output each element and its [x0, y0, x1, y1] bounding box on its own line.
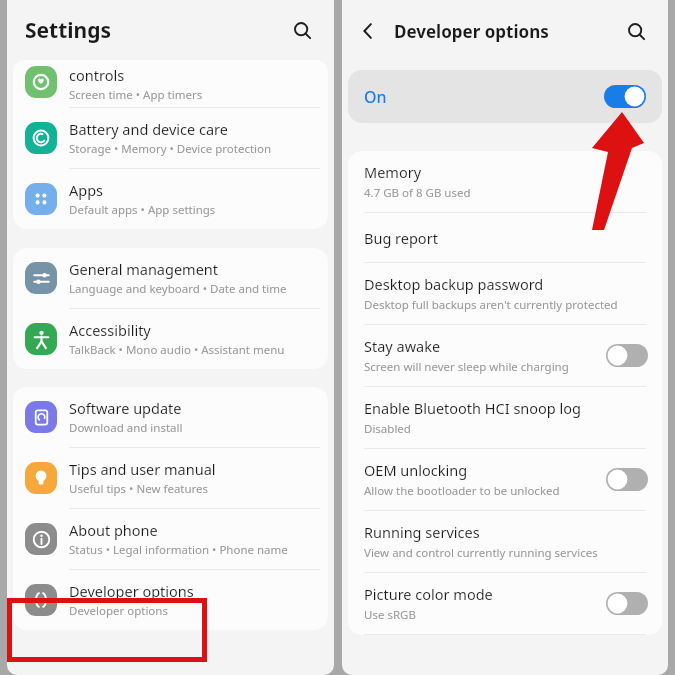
- staticText: Disabled: [364, 421, 411, 437]
- staticText: Software update: [69, 398, 182, 418]
- staticText: On: [364, 86, 604, 108]
- button[interactable]: Picture color mode: [348, 573, 662, 635]
- button[interactable]: Stay awake: [348, 325, 662, 387]
- staticText: Desktop backup password: [364, 274, 544, 294]
- staticText: Developer options: [69, 603, 168, 619]
- staticText: Screen will never sleep while charging: [364, 359, 569, 375]
- button[interactable]: Accessibility: [13, 309, 328, 369]
- staticText: About phone: [69, 520, 158, 540]
- staticText: General management: [69, 259, 219, 279]
- staticText: Bug report: [364, 228, 438, 248]
- staticText: Running services: [364, 522, 480, 542]
- staticText: Useful tips • New features: [69, 481, 209, 497]
- staticText: Allow the bootloader to be unlocked: [364, 483, 560, 499]
- staticText: Settings: [25, 16, 112, 45]
- button[interactable]: Toggle off: [606, 468, 648, 491]
- button[interactable]: Bug report: [348, 213, 662, 263]
- staticText: 4.7 GB of 8 GB used: [364, 185, 471, 201]
- staticText: Download and install: [69, 420, 183, 436]
- staticText: Default apps • App settings: [69, 202, 216, 218]
- staticText: Developer options: [69, 581, 194, 601]
- button[interactable]: Back: [350, 13, 386, 49]
- staticText: Language and keyboard • Date and time: [69, 281, 287, 297]
- button[interactable]: OEM unlocking: [348, 449, 662, 511]
- button[interactable]: General management: [13, 248, 328, 309]
- button[interactable]: Toggle off: [606, 592, 648, 615]
- staticText: Screen time • App timers: [69, 87, 203, 103]
- button[interactable]: On: [348, 70, 662, 123]
- button[interactable]: Developer options: [13, 570, 328, 630]
- button[interactable]: controls: [13, 60, 328, 108]
- staticText: Use sRGB: [364, 607, 416, 623]
- staticText: Tips and user manual: [69, 459, 216, 479]
- staticText: View and control currently running servi…: [364, 545, 598, 561]
- staticText: Stay awake: [364, 336, 441, 356]
- staticText: Developer options: [394, 20, 549, 43]
- staticText: OEM unlocking: [364, 460, 468, 480]
- staticText: Apps: [69, 180, 104, 200]
- button[interactable]: Software update: [13, 387, 328, 448]
- staticText: Storage • Memory • Device protection: [69, 141, 272, 157]
- button[interactable]: Search: [284, 12, 320, 48]
- button[interactable]: Enable Bluetooth HCI snoop log: [348, 387, 662, 449]
- button[interactable]: Memory: [348, 151, 662, 213]
- button[interactable]: Toggle off: [606, 344, 648, 367]
- staticText: Status • Legal information • Phone name: [69, 542, 288, 558]
- staticText: Enable Bluetooth HCI snoop log: [364, 398, 581, 418]
- button[interactable]: About phone: [13, 509, 328, 570]
- button[interactable]: Battery and device care: [13, 108, 328, 169]
- staticText: Memory: [364, 162, 422, 182]
- staticText: controls: [69, 65, 125, 85]
- staticText: TalkBack • Mono audio • Assistant menu: [69, 342, 285, 358]
- button[interactable]: Apps: [13, 169, 328, 229]
- button[interactable]: Desktop backup password: [348, 263, 662, 325]
- staticText: Picture color mode: [364, 584, 493, 604]
- button[interactable]: Search: [618, 13, 654, 49]
- button[interactable]: Running services: [348, 511, 662, 573]
- button[interactable]: Toggle on: [604, 85, 646, 108]
- staticText: Desktop full backups aren't currently pr…: [364, 297, 618, 313]
- staticText: Battery and device care: [69, 119, 228, 139]
- button[interactable]: Tips and user manual: [13, 448, 328, 509]
- staticText: Accessibility: [69, 320, 151, 340]
